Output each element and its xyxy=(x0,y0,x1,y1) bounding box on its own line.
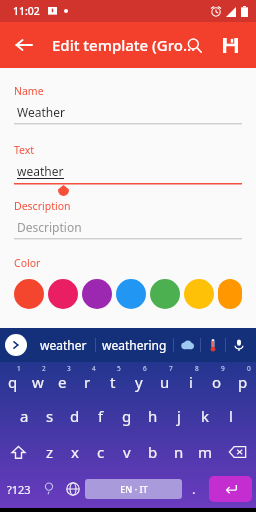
button[interactable]: Back xyxy=(6,27,42,63)
button[interactable]: o xyxy=(204,362,230,398)
staticText: d xyxy=(70,406,80,426)
staticText: EN · IT xyxy=(120,483,148,495)
staticText: m xyxy=(198,442,213,462)
staticText: Description xyxy=(17,219,82,235)
button[interactable]: weathering xyxy=(96,328,173,362)
button[interactable]: m xyxy=(192,434,218,470)
button[interactable]: Color 2 xyxy=(82,279,112,309)
staticText: ?123 xyxy=(7,482,31,497)
staticText: Color xyxy=(14,256,41,270)
staticText: Text xyxy=(14,143,35,157)
staticText: x xyxy=(71,442,79,462)
button[interactable]: l xyxy=(218,398,244,434)
button[interactable]: Color 4 xyxy=(150,279,180,309)
button[interactable]: Weather emoji xyxy=(174,328,200,362)
staticText: r xyxy=(84,372,91,392)
staticText: 0 xyxy=(247,364,251,373)
button[interactable]: v xyxy=(114,434,140,470)
button[interactable]: f xyxy=(88,398,114,434)
staticText: 11:02 xyxy=(13,4,40,18)
staticText: i xyxy=(189,372,193,392)
button[interactable]: b xyxy=(140,434,166,470)
button[interactable]: a xyxy=(12,398,37,434)
button[interactable]: ?123 xyxy=(0,470,37,508)
button[interactable]: Save xyxy=(212,27,248,63)
staticText: w xyxy=(32,372,44,392)
button[interactable]: p xyxy=(230,362,256,398)
staticText: h xyxy=(148,406,158,426)
button[interactable]: Thermometer emoji xyxy=(201,328,225,362)
button[interactable]: k xyxy=(192,398,218,434)
button[interactable]: Expand suggestions xyxy=(5,334,27,356)
staticText: f xyxy=(98,406,104,426)
button[interactable]: d xyxy=(62,398,88,434)
button[interactable]: Emoji and comma xyxy=(37,470,60,508)
staticText: . xyxy=(192,480,196,498)
staticText: l xyxy=(229,406,233,426)
staticText: z xyxy=(46,442,54,462)
button[interactable]: c xyxy=(88,434,114,470)
button[interactable]: EN · IT xyxy=(85,479,182,499)
button[interactable]: i xyxy=(178,362,204,398)
button[interactable]: z xyxy=(37,434,62,470)
staticText: weathering xyxy=(102,337,167,353)
staticText: Description xyxy=(14,199,71,213)
staticText: k xyxy=(201,406,210,426)
button[interactable]: w xyxy=(25,362,50,398)
staticText: weather xyxy=(17,163,64,179)
button[interactable]: g xyxy=(114,398,140,434)
button[interactable]: n xyxy=(166,434,192,470)
staticText: b xyxy=(148,442,158,462)
button[interactable]: . xyxy=(182,470,205,508)
staticText: u xyxy=(160,372,170,392)
button[interactable]: Color 0 xyxy=(14,279,44,309)
button[interactable]: Color 6 xyxy=(218,279,242,309)
button[interactable]: j xyxy=(166,398,192,434)
staticText: 9 xyxy=(221,364,225,373)
button[interactable]: Voice input xyxy=(226,328,252,362)
staticText: 7 xyxy=(169,364,173,373)
button[interactable]: t xyxy=(100,362,126,398)
staticText: 6 xyxy=(143,364,147,373)
staticText: e xyxy=(58,372,67,392)
staticText: n xyxy=(174,442,184,462)
staticText: p xyxy=(238,372,248,392)
staticText: s xyxy=(46,406,54,426)
button[interactable]: Enter xyxy=(209,476,252,502)
staticText: 5 xyxy=(117,364,121,373)
staticText: c xyxy=(97,442,105,462)
staticText: q xyxy=(8,372,18,392)
button[interactable]: Backspace xyxy=(218,434,256,470)
staticText: Edit template (Gro… xyxy=(52,35,196,55)
staticText: 2 xyxy=(42,364,46,373)
staticText: v xyxy=(123,442,131,462)
button[interactable]: u xyxy=(152,362,178,398)
staticText: Name xyxy=(14,84,44,98)
button[interactable]: y xyxy=(126,362,152,398)
button[interactable]: s xyxy=(37,398,62,434)
button[interactable]: Color 3 xyxy=(116,279,146,309)
staticText: a xyxy=(20,406,29,426)
staticText: 3 xyxy=(67,364,71,373)
button[interactable]: Change language xyxy=(60,470,85,508)
staticText: weather xyxy=(40,337,87,353)
button[interactable]: x xyxy=(62,434,88,470)
staticText: y xyxy=(135,372,143,392)
staticText: o xyxy=(212,372,222,392)
staticText: 4 xyxy=(92,364,96,373)
button[interactable]: Color 1 xyxy=(48,279,78,309)
staticText: 8 xyxy=(195,364,199,373)
button[interactable]: Search xyxy=(176,27,212,63)
staticText: j xyxy=(177,406,181,426)
button[interactable]: r xyxy=(75,362,100,398)
staticText: 1 xyxy=(17,364,21,373)
staticText: g xyxy=(122,406,132,426)
button[interactable]: q xyxy=(0,362,25,398)
staticText: Weather xyxy=(17,104,65,120)
button[interactable]: e xyxy=(50,362,75,398)
button[interactable]: weather xyxy=(32,328,95,362)
button[interactable]: Shift xyxy=(0,434,37,470)
button[interactable]: h xyxy=(140,398,166,434)
button[interactable]: Color 5 xyxy=(184,279,214,309)
staticText: t xyxy=(110,372,116,392)
